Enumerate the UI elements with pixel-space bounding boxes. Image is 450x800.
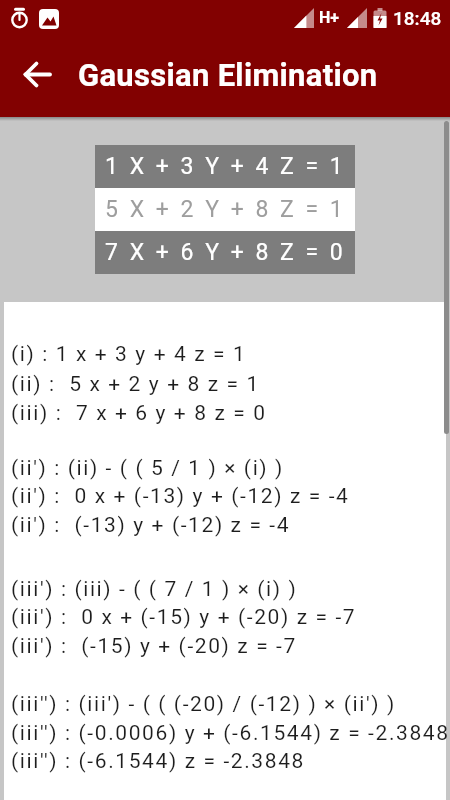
staticText: (ii) : 5 x + 2 y + 8 z = 1 [11,372,260,397]
staticText: (i) : 1 x + 3 y + 4 z = 1 [11,342,247,367]
staticText: 5 X + 2 Y + 8 Z = 1 [105,196,346,223]
staticText: H+ [319,8,340,27]
staticText: (iii') : 0 x + (-15) y + (-20) z = -7 [11,605,357,630]
staticText: Gaussian Elimination [78,57,378,93]
staticText: (iii'') : (-6.1544) z = -2.3848 [11,749,305,774]
staticText: (iii') : (iii) - ( ( 7 / 1 ) × (i) ) [11,577,298,602]
staticText: (iii') : (-15) y + (-20) z = -7 [11,634,297,659]
staticText: (iii'') : (-0.0006) y + (-6.1544) z = -2… [11,721,450,746]
staticText: (ii') : (ii) - ( ( 5 / 1 ) × (i) ) [11,456,284,481]
staticText: 7 X + 6 Y + 8 Z = 0 [105,239,346,266]
staticText: (iii) : 7 x + 6 y + 8 z = 0 [11,401,267,426]
staticText: (ii') : 0 x + (-13) y + (-12) z = -4 [11,484,350,509]
staticText: (iii'') : (iii') - ( ( (-20) / (-12) ) ×… [11,692,396,717]
staticText: (ii') : (-13) y + (-12) z = -4 [11,513,291,538]
staticText: 1 X + 3 Y + 4 Z = 1 [105,153,346,180]
staticText: 18:48 [393,7,442,29]
